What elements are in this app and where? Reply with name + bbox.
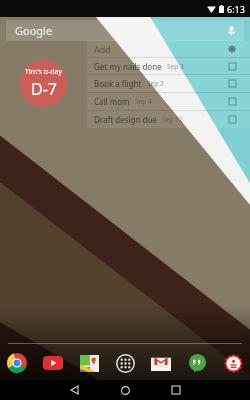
- staticText: Sep 12: [162, 115, 183, 124]
- button[interactable]: Maps: [75, 350, 103, 376]
- button[interactable]: App: [219, 350, 247, 376]
- staticText: Book a flight: [94, 78, 142, 89]
- staticText: Sep 3: [167, 62, 184, 71]
- staticText: Get my nails done: [94, 61, 162, 72]
- staticText: Sep 3: [147, 79, 164, 88]
- button[interactable]: Voice search: [226, 25, 237, 36]
- staticText: Google: [15, 23, 53, 38]
- button[interactable]: Recents: [166, 380, 186, 400]
- other: Settings: [228, 45, 236, 53]
- button[interactable]: Book a flight: [94, 75, 236, 92]
- staticText: Tim's b-day: [25, 67, 63, 77]
- staticText: Sep 4: [135, 97, 152, 106]
- button[interactable]: Google: [6, 20, 244, 41]
- staticText: Add: [94, 43, 111, 55]
- staticText: Draft design due: [94, 114, 157, 125]
- staticText: Call mom: [94, 96, 130, 107]
- button[interactable]: Draft design due: [94, 111, 236, 128]
- staticText: 6:13: [227, 3, 245, 15]
- button[interactable]: Home: [115, 380, 135, 400]
- button[interactable]: Call mom: [94, 93, 236, 110]
- button[interactable]: Apps: [111, 350, 139, 376]
- button[interactable]: Back: [64, 380, 84, 400]
- button[interactable]: Hangouts: [183, 350, 211, 376]
- button[interactable]: YouTube: [39, 350, 67, 376]
- button[interactable]: Chrome: [3, 350, 31, 376]
- staticText: D-7: [31, 78, 57, 100]
- button[interactable]: Gmail: [147, 350, 175, 376]
- button[interactable]: Add: [94, 40, 236, 57]
- button[interactable]: Tim's b-day: [20, 60, 67, 107]
- button[interactable]: Get my nails done: [94, 58, 236, 74]
